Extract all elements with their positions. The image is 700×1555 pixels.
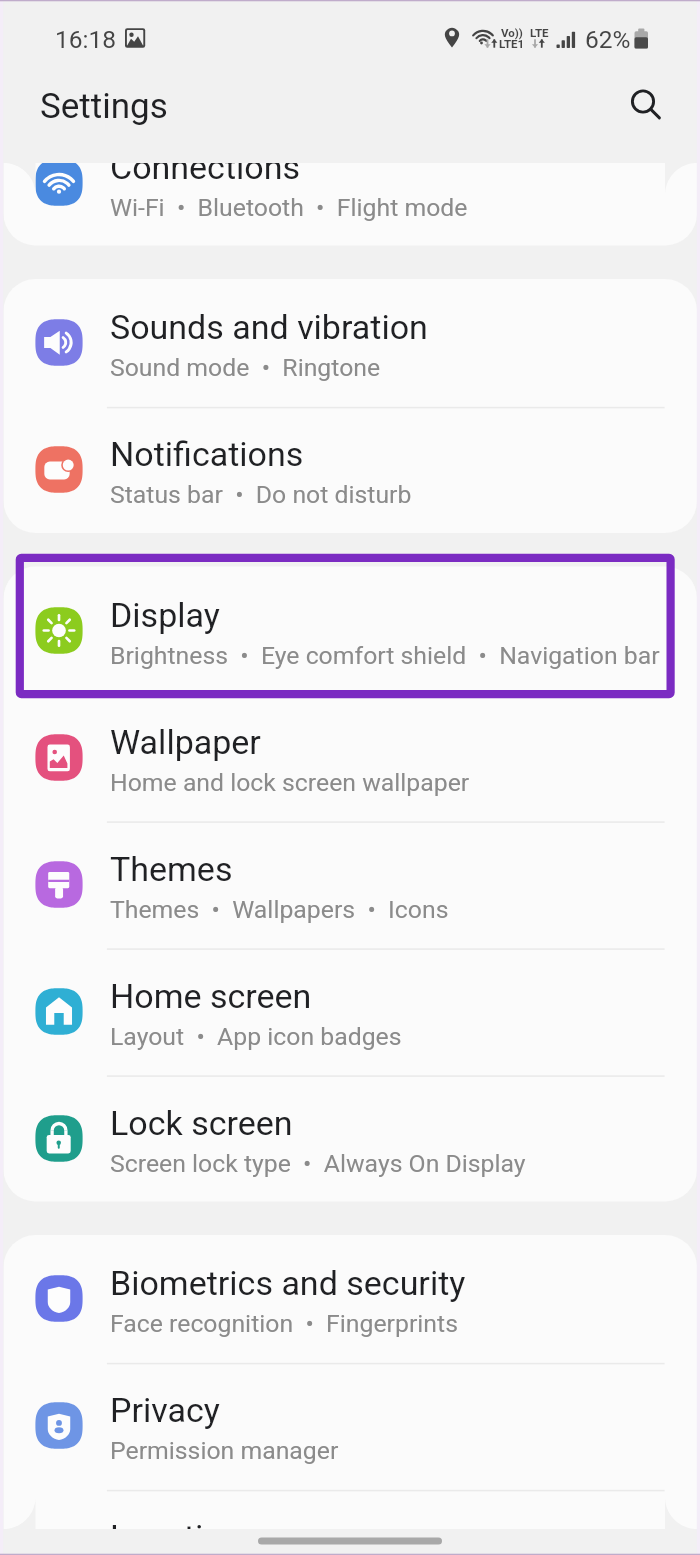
staticText: Vo)) — [501, 26, 523, 39]
staticText: Themes — [110, 849, 233, 889]
button[interactable]: Themes — [0, 821, 700, 948]
button[interactable]: Home screen — [0, 948, 700, 1075]
staticText: Notifications — [110, 434, 304, 474]
staticText: Layout • App icon badges — [110, 1022, 402, 1051]
staticText: Home and lock screen wallpaper — [110, 768, 470, 797]
staticText: Face recognition • Fingerprints — [110, 1309, 458, 1338]
staticText: Display — [110, 595, 220, 635]
button[interactable]: Search — [611, 69, 675, 133]
button[interactable]: Lock screen — [0, 1075, 700, 1202]
button[interactable]: Sounds and vibration — [0, 279, 700, 406]
button[interactable]: Wallpaper — [0, 694, 700, 821]
button[interactable]: Connections — [0, 163, 700, 246]
staticText: Home screen — [110, 976, 312, 1016]
button[interactable]: Privacy — [0, 1362, 700, 1489]
staticText: Privacy — [110, 1390, 220, 1430]
staticText: Sound mode • Ringtone — [110, 353, 381, 382]
staticText: Location — [110, 1517, 242, 1529]
button[interactable]: Biometrics and security — [0, 1235, 700, 1362]
staticText: Wallpaper — [110, 722, 261, 762]
staticText: Permission manager — [110, 1436, 339, 1465]
staticText: 62% — [585, 25, 631, 54]
staticText: 16:18 — [55, 25, 117, 54]
staticText: Connections — [110, 163, 301, 187]
staticText: Sounds and vibration — [110, 307, 428, 347]
staticText: Status bar • Do not disturb — [110, 480, 412, 509]
button[interactable]: Settings — [20, 72, 240, 130]
staticText: LTE1 — [499, 37, 525, 50]
staticText: Screen lock type • Always On Display — [110, 1149, 526, 1178]
staticText: Brightness • Eye comfort shield • Naviga… — [110, 641, 660, 670]
staticText: Settings — [40, 86, 168, 127]
staticText: Lock screen — [110, 1103, 293, 1143]
button[interactable]: Notifications — [0, 406, 700, 533]
staticText: Wi-Fi • Bluetooth • Flight mode — [110, 193, 468, 222]
staticText: Themes • Wallpapers • Icons — [110, 895, 449, 924]
staticText: Biometrics and security — [110, 1263, 466, 1303]
button[interactable]: Display — [0, 567, 700, 694]
button[interactable]: Location — [0, 1489, 700, 1529]
staticText: LTE — [530, 26, 549, 39]
